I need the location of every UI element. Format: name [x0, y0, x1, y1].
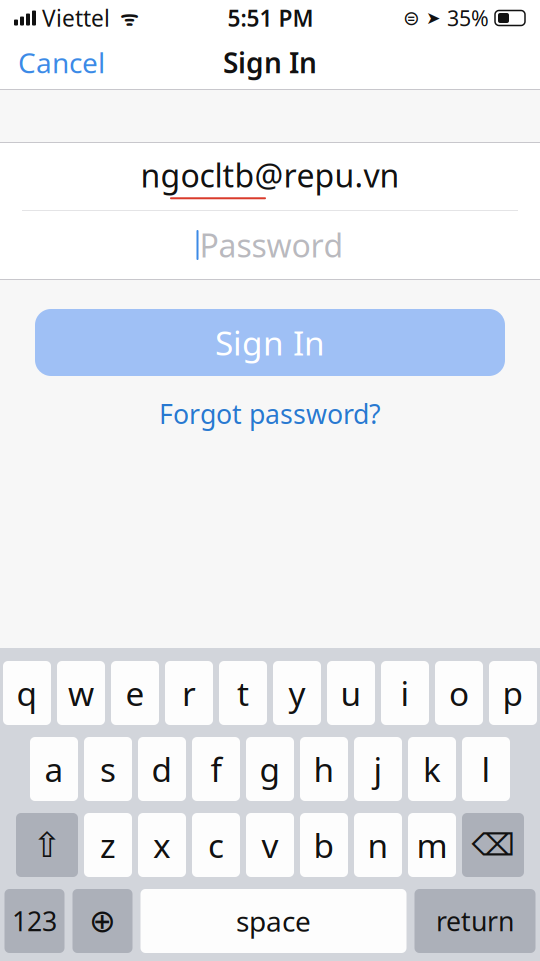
button[interactable]: b: [300, 813, 348, 877]
button[interactable]: f: [192, 737, 240, 801]
staticText: 123: [12, 903, 57, 939]
staticText: a: [44, 747, 63, 791]
staticText: o: [449, 671, 469, 715]
staticText: u: [340, 671, 361, 715]
staticText: h: [313, 747, 334, 791]
button[interactable]: z: [84, 813, 132, 877]
staticText: space: [236, 902, 311, 940]
staticText: e: [125, 671, 144, 715]
button[interactable]: o: [435, 661, 483, 725]
staticText: return: [436, 903, 514, 939]
staticText: w: [68, 671, 94, 715]
staticText: j: [373, 747, 382, 791]
staticText: ⊜: [403, 7, 420, 29]
button[interactable]: e: [111, 661, 159, 725]
staticText: b: [313, 823, 334, 867]
staticText: t: [237, 671, 249, 715]
staticText: p: [502, 671, 523, 715]
button[interactable]: k: [408, 737, 456, 801]
staticText: m: [416, 823, 447, 867]
button[interactable]: Next keyboard: [72, 889, 132, 953]
staticText: z: [100, 823, 116, 867]
staticText: ngocltb@repu.vn: [140, 154, 399, 196]
button[interactable]: n: [354, 813, 402, 877]
button[interactable]: Forgot password?: [139, 389, 401, 438]
staticText: n: [367, 823, 388, 867]
staticText: Password: [199, 224, 343, 266]
staticText: g: [259, 747, 280, 791]
button[interactable]: t: [219, 661, 267, 725]
button[interactable]: g: [246, 737, 294, 801]
staticText: Sign In: [223, 44, 317, 81]
staticText: Viettel: [36, 3, 110, 33]
staticText: c: [208, 823, 224, 867]
button[interactable]: a: [30, 737, 78, 801]
staticText: 35%: [447, 4, 489, 32]
button[interactable]: q: [3, 661, 51, 725]
staticText: k: [423, 747, 441, 791]
button[interactable]: y: [273, 661, 321, 725]
button[interactable]: u: [327, 661, 375, 725]
staticText: 5:51 PM: [227, 3, 313, 33]
staticText: l: [481, 747, 490, 791]
staticText: ⇧: [32, 825, 61, 865]
button[interactable]: Delete: [462, 813, 524, 877]
button[interactable]: space: [140, 889, 406, 953]
staticText: r: [182, 671, 196, 715]
button[interactable]: l: [462, 737, 510, 801]
button[interactable]: [414, 889, 535, 953]
staticText: ⌫: [471, 828, 514, 862]
button[interactable]: r: [165, 661, 213, 725]
button[interactable]: h: [300, 737, 348, 801]
staticText: Cancel: [18, 44, 105, 81]
button[interactable]: d: [138, 737, 186, 801]
button[interactable]: w: [57, 661, 105, 725]
staticText: Sign In: [215, 320, 325, 365]
staticText: v: [261, 823, 278, 867]
button[interactable]: v: [246, 813, 294, 877]
button[interactable]: Shift: [16, 813, 78, 877]
button[interactable]: s: [84, 737, 132, 801]
button[interactable]: m: [408, 813, 456, 877]
staticText: i: [400, 671, 409, 715]
button[interactable]: i: [381, 661, 429, 725]
staticText: f: [210, 747, 221, 791]
button[interactable]: x: [138, 813, 186, 877]
staticText: x: [153, 823, 171, 867]
staticText: y: [288, 671, 305, 715]
staticText: s: [100, 747, 116, 791]
button[interactable]: j: [354, 737, 402, 801]
staticText: q: [16, 671, 37, 715]
button[interactable]: c: [192, 813, 240, 877]
button[interactable]: [4, 889, 64, 953]
button[interactable]: p: [489, 661, 537, 725]
staticText: ᯤ: [110, 5, 138, 31]
staticText: ➤: [420, 8, 447, 28]
staticText: d: [151, 747, 172, 791]
staticText: ⊕: [89, 903, 116, 939]
button[interactable]: Cancel: [0, 36, 123, 89]
button[interactable]: Sign In: [35, 309, 505, 376]
staticText: Forgot password?: [159, 396, 381, 431]
